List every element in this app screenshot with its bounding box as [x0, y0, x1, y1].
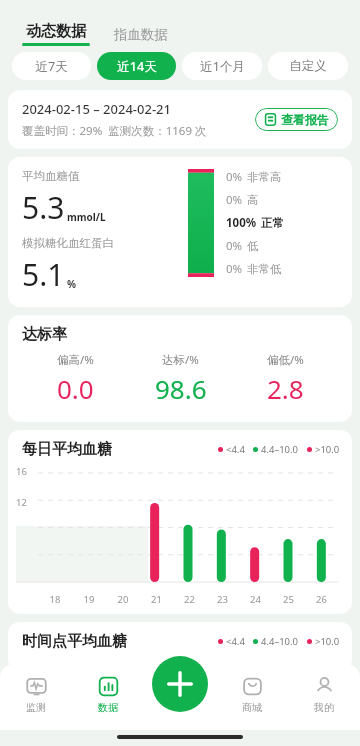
button[interactable]: 近14天: [97, 52, 176, 80]
staticText: 5.1: [22, 254, 65, 295]
button[interactable]: Add record: [152, 656, 208, 712]
button[interactable]: 指血数据: [112, 23, 170, 46]
staticText: 达标率: [22, 325, 67, 344]
staticText: 4.4–10.0: [261, 443, 299, 456]
staticText: 动态数据: [26, 22, 86, 41]
button[interactable]: 数据: [72, 664, 144, 726]
staticText: 0%: [226, 169, 243, 185]
staticText: 模拟糖化血红蛋白: [22, 236, 114, 250]
staticText: 正常: [261, 216, 284, 230]
staticText: 0%: [226, 238, 243, 254]
staticText: %: [67, 277, 77, 291]
staticText: 自定义: [289, 58, 327, 74]
staticText: 4.4–10.0: [261, 635, 299, 648]
staticText: 覆盖时间：29% 监测次数：1169 次: [22, 123, 207, 139]
staticText: 0%: [226, 192, 243, 208]
staticText: 监测: [26, 701, 46, 714]
staticText: mmol/L: [67, 210, 106, 224]
button[interactable]: 商城: [216, 664, 288, 726]
staticText: 指血数据: [114, 26, 168, 43]
staticText: 21: [140, 593, 173, 606]
staticText: 16: [16, 465, 27, 478]
button[interactable]: 查看报告: [255, 108, 338, 131]
staticText: 0.0: [57, 371, 94, 406]
staticText: 22: [173, 593, 206, 606]
staticText: 20: [106, 593, 140, 606]
button[interactable]: 动态数据: [20, 22, 92, 46]
button[interactable]: 近7天: [12, 52, 91, 80]
staticText: 偏高/%: [57, 352, 94, 368]
staticText: 26: [305, 593, 338, 606]
staticText: 25: [272, 593, 305, 606]
staticText: 偏低/%: [267, 352, 304, 368]
staticText: 低: [247, 239, 259, 253]
staticText: 24: [239, 593, 272, 606]
staticText: 达标/%: [162, 352, 199, 368]
staticText: 近7天: [35, 58, 68, 75]
staticText: 98.6: [155, 371, 207, 406]
staticText: 近1个月: [200, 58, 245, 75]
staticText: 0%: [226, 261, 243, 277]
staticText: 18: [38, 593, 72, 606]
button[interactable]: 近1个月: [182, 52, 262, 80]
staticText: <4.4: [226, 443, 245, 456]
staticText: 12: [16, 496, 27, 509]
button[interactable]: 自定义: [268, 52, 348, 80]
staticText: 5.3: [22, 187, 65, 228]
staticText: >10.0: [315, 635, 340, 648]
staticText: 高: [247, 193, 259, 207]
button[interactable]: 监测: [0, 664, 72, 726]
staticText: 100%: [226, 215, 257, 231]
staticText: 查看报告: [281, 112, 329, 127]
staticText: 23: [206, 593, 239, 606]
staticText: 2.8: [267, 371, 304, 406]
staticText: 非常高: [247, 170, 282, 184]
button[interactable]: 我的: [288, 664, 360, 726]
staticText: 数据: [98, 701, 118, 714]
staticText: >10.0: [315, 443, 340, 456]
staticText: 近14天: [117, 58, 157, 75]
staticText: 每日平均血糖: [22, 440, 112, 459]
staticText: 商城: [242, 701, 262, 714]
staticText: <4.4: [226, 635, 245, 648]
staticText: 平均血糖值: [22, 169, 80, 183]
staticText: 时间点平均血糖: [22, 632, 127, 651]
staticText: 非常低: [247, 262, 282, 276]
staticText: 我的: [314, 701, 334, 714]
staticText: 2024-02-15 – 2024-02-21: [22, 100, 171, 118]
staticText: 19: [72, 593, 106, 606]
